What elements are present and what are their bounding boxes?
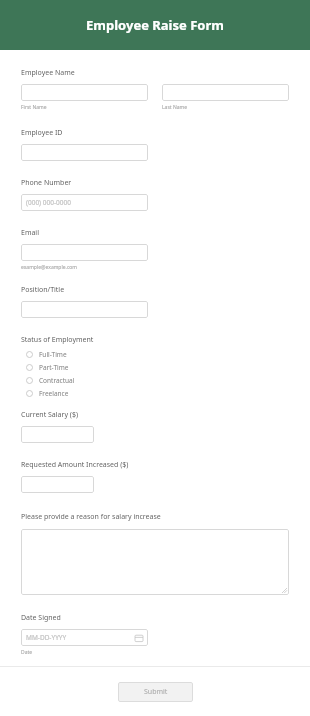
staticText: example@example.com bbox=[21, 264, 77, 271]
other: Open calendar bbox=[135, 634, 143, 642]
staticText: Requested Amount Increased ($) bbox=[21, 460, 129, 470]
button[interactable] bbox=[21, 144, 148, 161]
staticText: Status of Employment bbox=[21, 335, 94, 345]
button[interactable] bbox=[21, 426, 94, 443]
button[interactable]: (000) 000-0000 bbox=[21, 194, 148, 211]
button[interactable] bbox=[21, 244, 148, 261]
button[interactable]: Full-Time bbox=[21, 348, 289, 361]
staticText: Employee ID bbox=[21, 128, 63, 138]
button[interactable] bbox=[21, 84, 148, 101]
staticText: Contractual bbox=[39, 376, 75, 385]
staticText: Last Name bbox=[162, 104, 188, 111]
staticText: Submit bbox=[144, 687, 168, 697]
button[interactable]: Freelance bbox=[21, 387, 289, 400]
button[interactable]: Contractual bbox=[21, 374, 289, 387]
staticText: Date bbox=[21, 649, 33, 656]
staticText: Employee Name bbox=[21, 68, 75, 78]
staticText: Current Salary ($) bbox=[21, 410, 79, 420]
staticText: Date Signed bbox=[21, 613, 61, 623]
button[interactable] bbox=[21, 529, 289, 595]
staticText: Email bbox=[21, 228, 39, 238]
staticText: Full-Time bbox=[39, 350, 67, 359]
button[interactable] bbox=[21, 301, 148, 318]
staticText: Position/Title bbox=[21, 285, 65, 295]
staticText: (000) 000-0000 bbox=[26, 198, 71, 207]
staticText: Phone Number bbox=[21, 178, 72, 188]
button[interactable] bbox=[21, 476, 94, 493]
staticText: Please provide a reason for salary incre… bbox=[21, 512, 161, 522]
staticText: Part-Time bbox=[39, 363, 69, 372]
staticText: Freelance bbox=[39, 389, 69, 398]
button[interactable]: Part-Time bbox=[21, 361, 289, 374]
button[interactable] bbox=[162, 84, 289, 101]
button[interactable]: MM-DD-YYYY bbox=[21, 629, 148, 646]
staticText: First Name bbox=[21, 104, 47, 111]
button[interactable]: Submit bbox=[118, 682, 193, 702]
staticText: Employee Raise Form bbox=[86, 16, 224, 34]
staticText: MM-DD-YYYY bbox=[26, 633, 67, 642]
